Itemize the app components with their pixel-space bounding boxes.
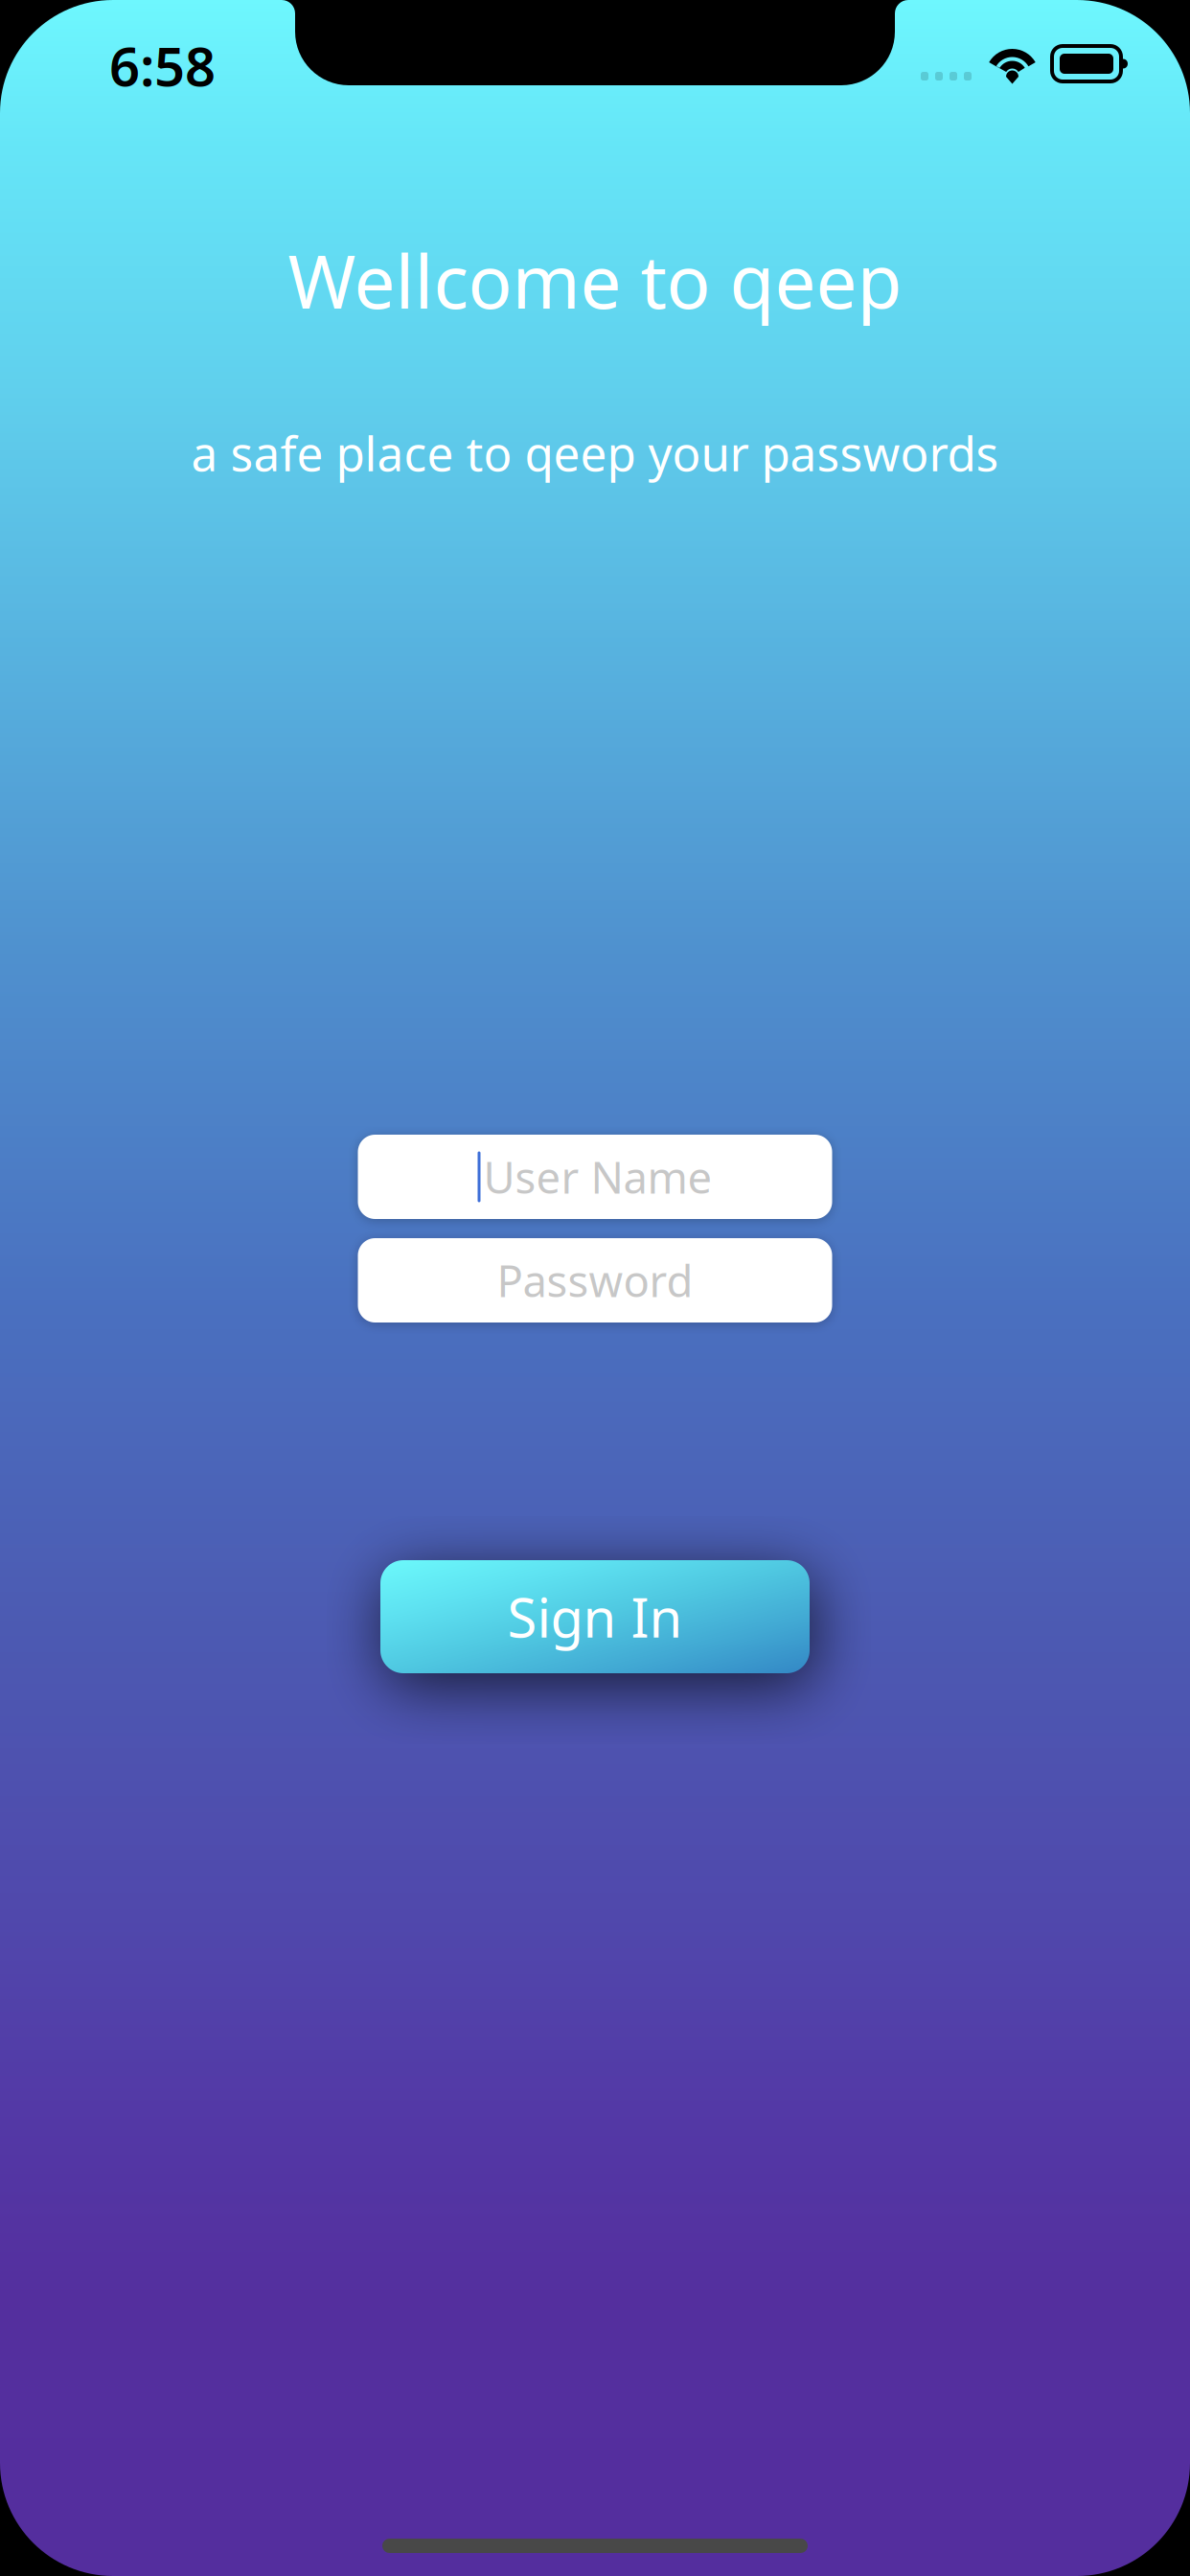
staticText: a safe place to qeep your passwords	[191, 422, 999, 484]
staticText: 6:58	[109, 30, 216, 101]
button[interactable]: Sign In	[380, 1560, 810, 1673]
staticText: Password	[497, 1251, 693, 1309]
staticText: Sign In	[507, 1581, 683, 1652]
staticText: User Name	[483, 1148, 712, 1206]
staticText: Wellcome to qeep	[288, 232, 902, 329]
